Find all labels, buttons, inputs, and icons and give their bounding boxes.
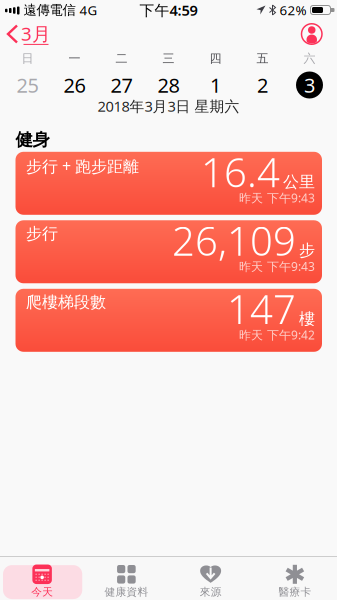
staticText: 26,109 bbox=[172, 214, 296, 267]
staticText: 步行 + 跑步距離 bbox=[26, 155, 139, 176]
button[interactable]: 26 bbox=[51, 68, 98, 102]
staticText: 147 bbox=[227, 282, 296, 335]
staticText: 3 bbox=[304, 72, 315, 98]
staticText: 公里 bbox=[283, 172, 315, 192]
staticText: 五 bbox=[256, 51, 268, 66]
staticText: 健身 bbox=[15, 129, 49, 150]
staticText: 昨天 下午9:43 bbox=[239, 190, 315, 206]
button[interactable]: 3月 bbox=[0, 21, 51, 47]
button[interactable]: 28 bbox=[145, 68, 192, 102]
button[interactable]: 2 bbox=[239, 68, 286, 102]
staticText: 4G bbox=[79, 1, 97, 19]
staticText: 四 bbox=[209, 51, 221, 66]
button[interactable]: 健康資料 bbox=[84, 556, 168, 600]
staticText: 日 bbox=[21, 51, 33, 66]
staticText: 步行 bbox=[26, 224, 58, 243]
staticText: 25 bbox=[16, 72, 38, 98]
button[interactable]: 步行 + 跑步距離 bbox=[15, 152, 322, 215]
staticText: 今天 bbox=[31, 585, 53, 598]
button[interactable]: 個人檔案 bbox=[301, 24, 337, 44]
staticText: 62% bbox=[279, 1, 306, 19]
staticText: 樓 bbox=[299, 309, 315, 329]
button[interactable]: 來源 bbox=[168, 556, 253, 600]
staticText: 六 bbox=[303, 51, 315, 66]
staticText: 醫療卡 bbox=[278, 585, 311, 598]
button[interactable]: 醫療卡 bbox=[253, 556, 337, 600]
staticText: 三 bbox=[162, 51, 174, 66]
staticText: 昨天 下午9:43 bbox=[239, 258, 315, 274]
staticText: 爬樓梯段數 bbox=[26, 292, 106, 312]
button[interactable]: 今天 bbox=[0, 556, 84, 600]
staticText: 27 bbox=[110, 72, 132, 98]
button[interactable]: 爬樓梯段數 bbox=[15, 289, 322, 352]
staticText: 28 bbox=[157, 72, 179, 98]
staticText: 昨天 下午9:42 bbox=[239, 327, 315, 343]
staticText: 健康資料 bbox=[104, 585, 148, 598]
button[interactable]: 25 bbox=[4, 68, 51, 102]
staticText: 1 bbox=[210, 72, 221, 98]
staticText: 3月 bbox=[21, 21, 51, 46]
staticText: 步 bbox=[299, 241, 315, 260]
staticText: 遠傳電信 bbox=[23, 2, 75, 18]
staticText: 下午4:59 bbox=[139, 0, 197, 20]
staticText: 2 bbox=[257, 72, 268, 98]
staticText: 來源 bbox=[200, 585, 222, 598]
staticText: 一 bbox=[68, 51, 80, 66]
staticText: 16.4 bbox=[201, 145, 280, 198]
staticText: 2018年3月3日 星期六 bbox=[97, 96, 239, 116]
staticText: 26 bbox=[63, 72, 85, 98]
button[interactable]: 27 bbox=[98, 68, 145, 102]
button[interactable]: 步行 bbox=[15, 220, 322, 283]
staticText: 二 bbox=[115, 51, 127, 66]
button[interactable]: 1 bbox=[192, 68, 239, 102]
button[interactable]: 3 bbox=[286, 68, 333, 102]
